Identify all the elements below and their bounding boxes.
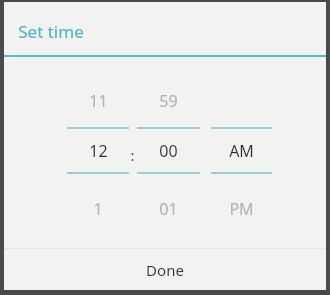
staticText: : — [130, 145, 135, 165]
staticText: Done — [146, 260, 184, 280]
staticText: 00 — [159, 140, 178, 162]
staticText: 11 — [89, 90, 108, 112]
staticText: PM — [229, 198, 254, 220]
button[interactable]: AM — [211, 137, 272, 165]
staticText: AM — [229, 140, 254, 162]
button[interactable]: Done — [4, 249, 326, 290]
staticText: 1 — [93, 198, 103, 220]
staticText: 59 — [159, 90, 178, 112]
button[interactable]: 00 — [137, 137, 200, 165]
staticText: Set time — [18, 20, 84, 43]
button[interactable]: 12 — [67, 137, 129, 165]
staticText: 01 — [159, 198, 178, 220]
staticText: 12 — [89, 140, 108, 162]
